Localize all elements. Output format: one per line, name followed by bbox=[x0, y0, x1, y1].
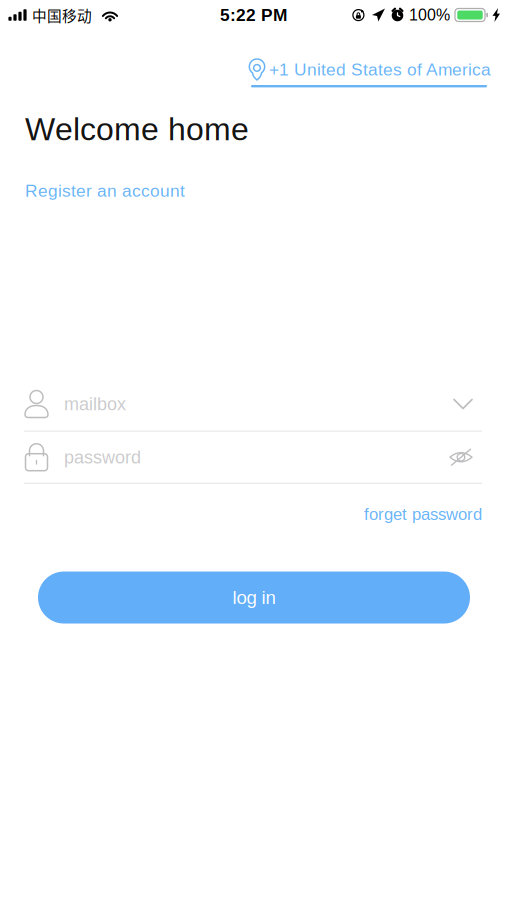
button[interactable]: log in bbox=[38, 571, 470, 623]
staticText: 中国移动 bbox=[32, 4, 92, 26]
staticText: 5:22 PM bbox=[220, 5, 287, 25]
staticText: forget password bbox=[364, 505, 482, 523]
button[interactable]: Show password bbox=[440, 439, 482, 475]
staticText: 100% bbox=[409, 6, 450, 24]
staticText: Welcome home bbox=[25, 111, 249, 147]
button[interactable]: Register an account bbox=[0, 174, 210, 208]
button[interactable]: Choose account bbox=[444, 389, 482, 418]
button[interactable]: forget password bbox=[348, 497, 507, 531]
staticText: +1 United States of America bbox=[269, 60, 491, 79]
staticText: log in bbox=[232, 587, 275, 608]
button[interactable]: +1 United States of America bbox=[249, 59, 493, 87]
staticText: mailbox bbox=[64, 394, 126, 414]
staticText: Register an account bbox=[25, 181, 185, 201]
staticText: password bbox=[64, 447, 141, 467]
